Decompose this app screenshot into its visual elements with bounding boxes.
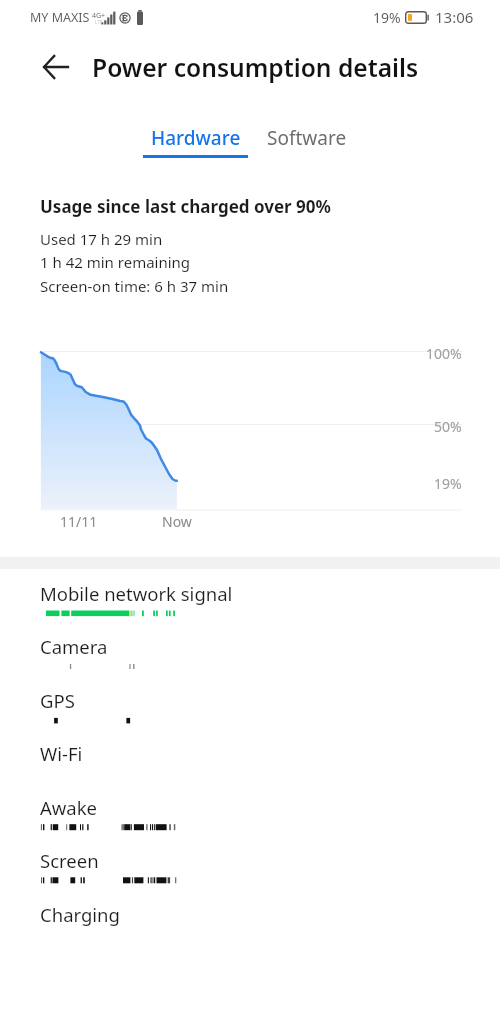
staticText: Wi-Fi (40, 741, 83, 766)
staticText: Now (162, 512, 192, 531)
staticText: Screen-on time: 6 h 37 min (40, 276, 229, 296)
staticText: GPS (40, 688, 75, 713)
staticText: Awake (40, 795, 98, 820)
button[interactable]: Screen (0, 840, 500, 890)
staticText: 19% (373, 8, 401, 27)
staticText: 19% (434, 474, 462, 493)
button[interactable]: Camera (0, 626, 500, 676)
staticText: Screen (40, 848, 99, 873)
staticText: Power consumption details (92, 51, 419, 85)
button[interactable]: Wi-Fi (0, 733, 500, 783)
staticText: LTE (95, 19, 103, 25)
button[interactable]: Awake (0, 787, 500, 837)
button[interactable]: Hardware (143, 125, 248, 161)
button[interactable]: Software (262, 125, 352, 155)
staticText: MY MAXIS (30, 9, 90, 26)
button[interactable]: Back (31, 42, 80, 91)
staticText: Camera (40, 634, 108, 659)
staticText: 50% (434, 417, 462, 436)
staticText: Usage since last charged over 90% (40, 195, 331, 218)
button[interactable]: GPS (0, 680, 500, 730)
staticText: 13:06 (435, 7, 474, 27)
staticText: 1 h 42 min remaining (40, 252, 191, 272)
staticText: Charging (40, 902, 120, 927)
staticText: Hardware (151, 125, 241, 151)
staticText: Mobile network signal (40, 581, 233, 606)
staticText: Software (267, 125, 347, 151)
staticText: 4G+ (92, 11, 106, 21)
button[interactable]: Mobile network signal (0, 573, 500, 623)
staticText: 11/11 (60, 512, 98, 531)
button[interactable]: Charging (0, 894, 500, 944)
staticText: Used 17 h 29 min (40, 229, 163, 249)
staticText: 100% (426, 344, 462, 363)
